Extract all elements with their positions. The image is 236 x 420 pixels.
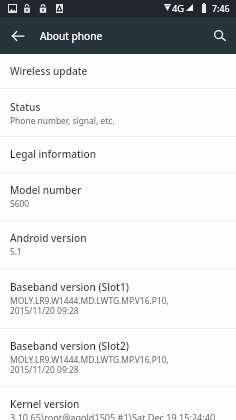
staticText: Baseband version (Slot2) xyxy=(10,339,129,353)
staticText: About phone xyxy=(40,29,103,43)
staticText: Legal information xyxy=(10,147,97,161)
button[interactable]: Navigate up xyxy=(2,17,34,54)
staticText: Android version xyxy=(10,231,87,245)
staticText: Wireless update xyxy=(10,64,88,78)
staticText: Model number xyxy=(10,183,82,197)
staticText: MOLY.LR9.W1444.MD.LWTG.MP.V16.P10, 2015/… xyxy=(10,295,169,316)
staticText: 5.1 xyxy=(10,246,22,258)
staticText: Phone number, signal, etc. xyxy=(10,115,115,127)
button[interactable]: Model number xyxy=(0,173,236,220)
staticText: Kernel version xyxy=(10,397,80,411)
staticText: S600 xyxy=(10,198,30,210)
button[interactable]: Android version xyxy=(0,221,236,268)
button[interactable]: Baseband version (Slot1) xyxy=(0,269,236,328)
staticText: 7:46 xyxy=(212,3,230,15)
button[interactable]: Baseband version (Slot2) xyxy=(0,329,236,386)
button[interactable]: Search xyxy=(204,17,236,54)
button[interactable]: Status xyxy=(0,89,236,136)
staticText: Baseband version (Slot1) xyxy=(10,280,129,294)
button[interactable]: Kernel version xyxy=(0,387,236,420)
button[interactable]: Legal information xyxy=(0,137,236,172)
staticText: Status xyxy=(10,100,41,114)
staticText: 4G xyxy=(172,2,185,15)
staticText: 3.10.65\root@agold1505 #1\Sat Dec 19 15:… xyxy=(10,411,216,420)
staticText: MOLY.LR9.W1444.MD.LWTG.MP.V16.P10, 2015/… xyxy=(10,354,169,375)
button[interactable]: Wireless update xyxy=(0,54,236,88)
